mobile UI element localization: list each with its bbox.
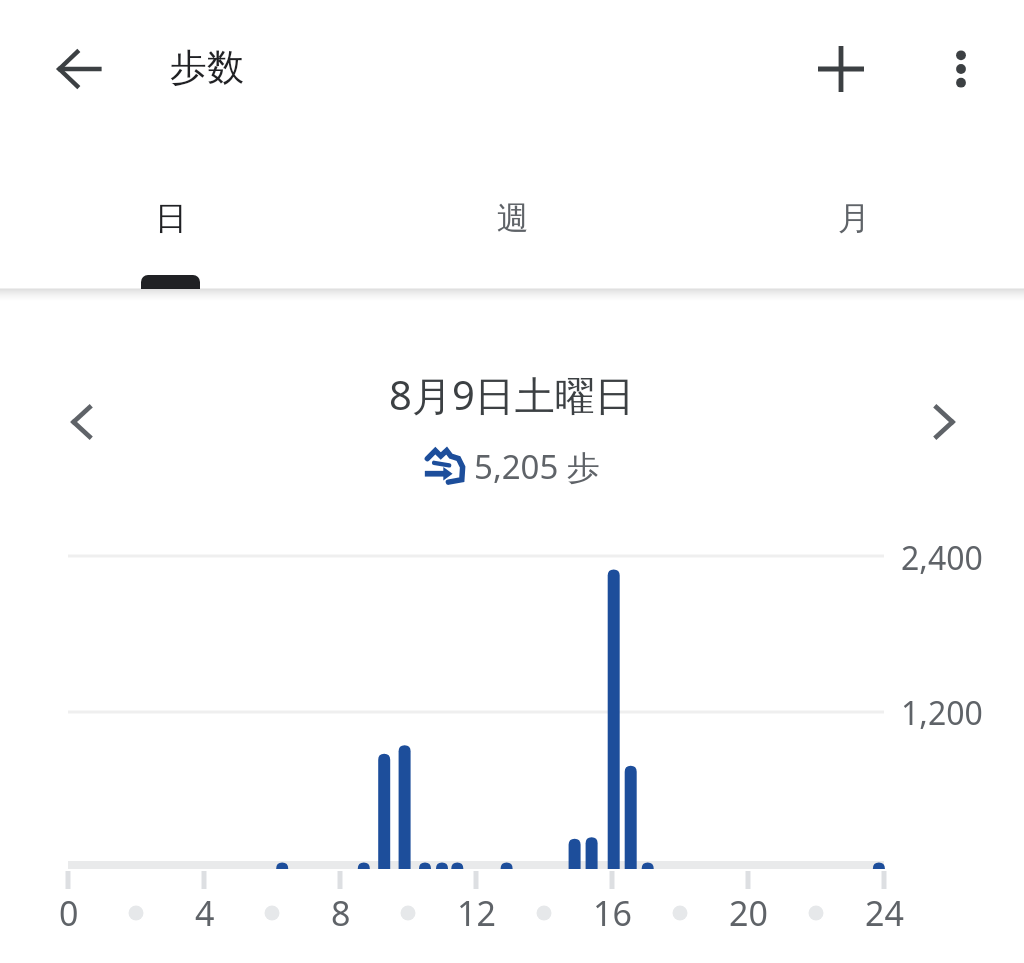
staticText: 1,200 bbox=[901, 691, 983, 735]
button[interactable]: Previous day bbox=[46, 386, 118, 458]
button[interactable]: 週 bbox=[342, 160, 683, 275]
staticText: 8 bbox=[331, 890, 351, 936]
staticText: 週 bbox=[497, 198, 529, 238]
staticText: 20 bbox=[729, 890, 768, 936]
button[interactable]: Next day bbox=[908, 386, 980, 458]
staticText: 5,205 歩 bbox=[474, 444, 600, 489]
button[interactable]: 日 bbox=[0, 160, 342, 275]
staticText: 歩数 bbox=[170, 44, 244, 91]
staticText: 日 bbox=[155, 198, 187, 238]
button[interactable]: Add bbox=[805, 33, 877, 105]
button[interactable]: 月 bbox=[683, 160, 1024, 275]
staticText: 2,400 bbox=[901, 536, 983, 580]
staticText: 16 bbox=[593, 890, 632, 936]
staticText: 月 bbox=[838, 198, 870, 238]
staticText: 12 bbox=[457, 890, 496, 936]
staticText: 0 bbox=[59, 890, 79, 936]
button[interactable]: More options bbox=[925, 33, 997, 105]
button[interactable]: Back bbox=[44, 33, 116, 105]
staticText: 8月9日土曜日 bbox=[389, 367, 635, 422]
staticText: 24 bbox=[865, 890, 904, 936]
staticText: 4 bbox=[195, 890, 215, 936]
